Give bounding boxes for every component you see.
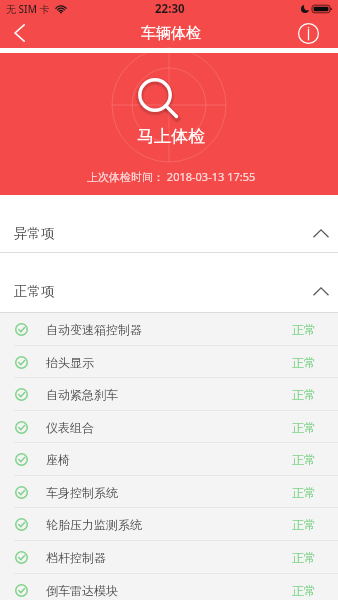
button[interactable]: 仪表组合 bbox=[0, 410, 338, 443]
button[interactable]: 自动紧急刹车 bbox=[0, 377, 338, 410]
staticText: 正常项 bbox=[14, 283, 55, 300]
staticText: 车身控制系统 bbox=[46, 485, 118, 500]
staticText: 正常 bbox=[292, 583, 316, 598]
staticText: 倒车雷达模块 bbox=[46, 583, 118, 598]
button[interactable]: 轮胎压力监测系统 bbox=[0, 507, 338, 540]
staticText: 自动紧急刹车 bbox=[46, 387, 118, 402]
button[interactable]: 正常项 bbox=[0, 253, 338, 311]
button[interactable]: 档杆控制器 bbox=[0, 540, 338, 573]
staticText: 无 SIM 卡 bbox=[6, 2, 50, 16]
button[interactable]: 异常项 bbox=[0, 195, 338, 253]
button[interactable]: Info bbox=[297, 22, 319, 44]
staticText: 正常 bbox=[292, 485, 316, 500]
staticText: 异常项 bbox=[14, 225, 55, 242]
button[interactable]: Back bbox=[0, 18, 38, 48]
staticText: 马上体检 bbox=[137, 126, 205, 147]
staticText: 22:30 bbox=[155, 1, 185, 17]
staticText: 轮胎压力监测系统 bbox=[46, 517, 142, 532]
staticText: 座椅 bbox=[46, 452, 70, 467]
staticText: 档杆控制器 bbox=[46, 550, 106, 565]
staticText: 正常 bbox=[292, 420, 316, 435]
staticText: 车辆体检 bbox=[141, 24, 201, 43]
staticText: 仪表组合 bbox=[46, 420, 94, 435]
staticText: 自动变速箱控制器 bbox=[46, 322, 142, 337]
staticText: 正常 bbox=[292, 550, 316, 565]
button[interactable]: 抬头显示 bbox=[0, 345, 338, 378]
staticText: 正常 bbox=[292, 387, 316, 402]
button[interactable]: 自动变速箱控制器 bbox=[0, 312, 338, 345]
staticText: 正常 bbox=[292, 517, 316, 532]
button[interactable]: 座椅 bbox=[0, 442, 338, 475]
button[interactable]: 车身控制系统 bbox=[0, 475, 338, 508]
staticText: 正常 bbox=[292, 355, 316, 370]
button[interactable]: 倒车雷达模块 bbox=[0, 573, 338, 600]
staticText: 上次体检时间： 2018-03-13 17:55 bbox=[87, 169, 256, 184]
staticText: 正常 bbox=[292, 322, 316, 337]
staticText: 抬头显示 bbox=[46, 355, 94, 370]
staticText: 正常 bbox=[292, 452, 316, 467]
